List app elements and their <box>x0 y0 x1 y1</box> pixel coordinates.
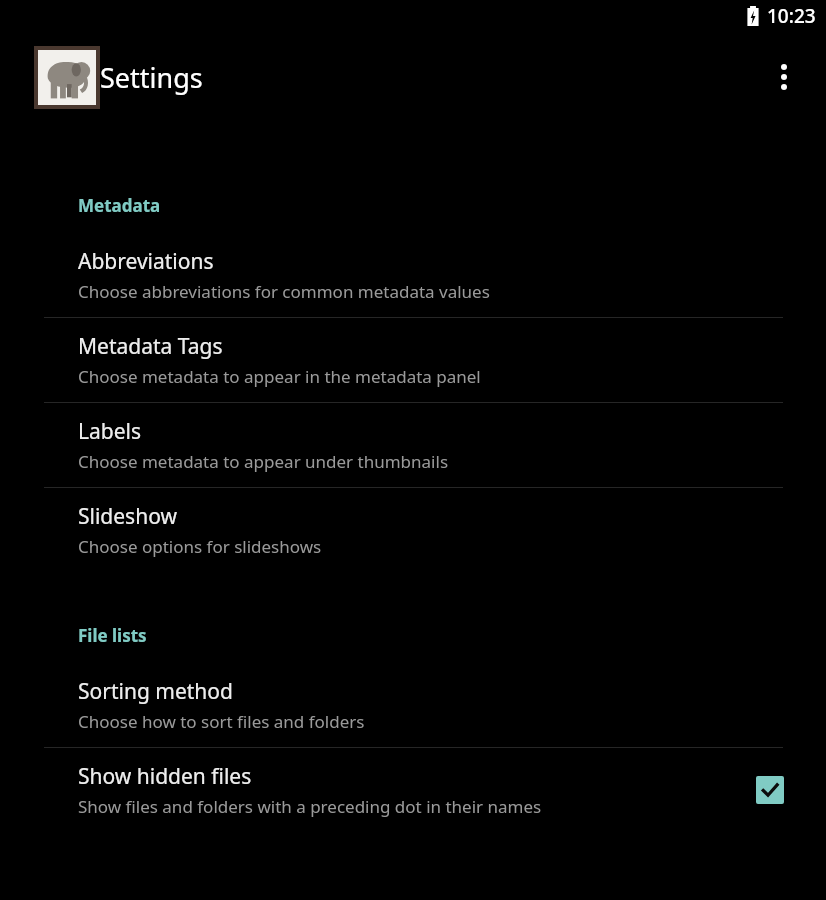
staticText: Choose how to sort files and folders <box>78 710 365 733</box>
staticText: 10:23 <box>767 3 816 29</box>
staticText: Choose metadata to appear under thumbnai… <box>78 450 449 473</box>
button[interactable]: Slideshow <box>0 488 826 572</box>
other: Show hidden files toggle <box>756 776 784 804</box>
button[interactable]: Sorting method <box>0 663 826 747</box>
button[interactable]: Metadata Tags <box>0 318 826 402</box>
staticText: Show files and folders with a preceding … <box>78 795 542 818</box>
staticText: Labels <box>78 417 142 446</box>
staticText: Slideshow <box>78 502 177 531</box>
staticText: Sorting method <box>78 677 233 706</box>
staticText: Metadata <box>78 194 161 217</box>
staticText: Choose metadata to appear in the metadat… <box>78 365 481 388</box>
staticText: Settings <box>100 59 203 96</box>
button[interactable]: Abbreviations <box>0 233 826 317</box>
staticText: Choose options for slideshows <box>78 535 322 558</box>
staticText: Abbreviations <box>78 247 214 276</box>
button[interactable]: Show hidden files <box>0 748 826 832</box>
staticText: Show hidden files <box>78 762 252 791</box>
button[interactable]: Labels <box>0 403 826 487</box>
staticText: Choose abbreviations for common metadata… <box>78 280 490 303</box>
staticText: File lists <box>78 624 147 647</box>
staticText: Metadata Tags <box>78 332 223 361</box>
button[interactable]: More options <box>760 53 808 101</box>
